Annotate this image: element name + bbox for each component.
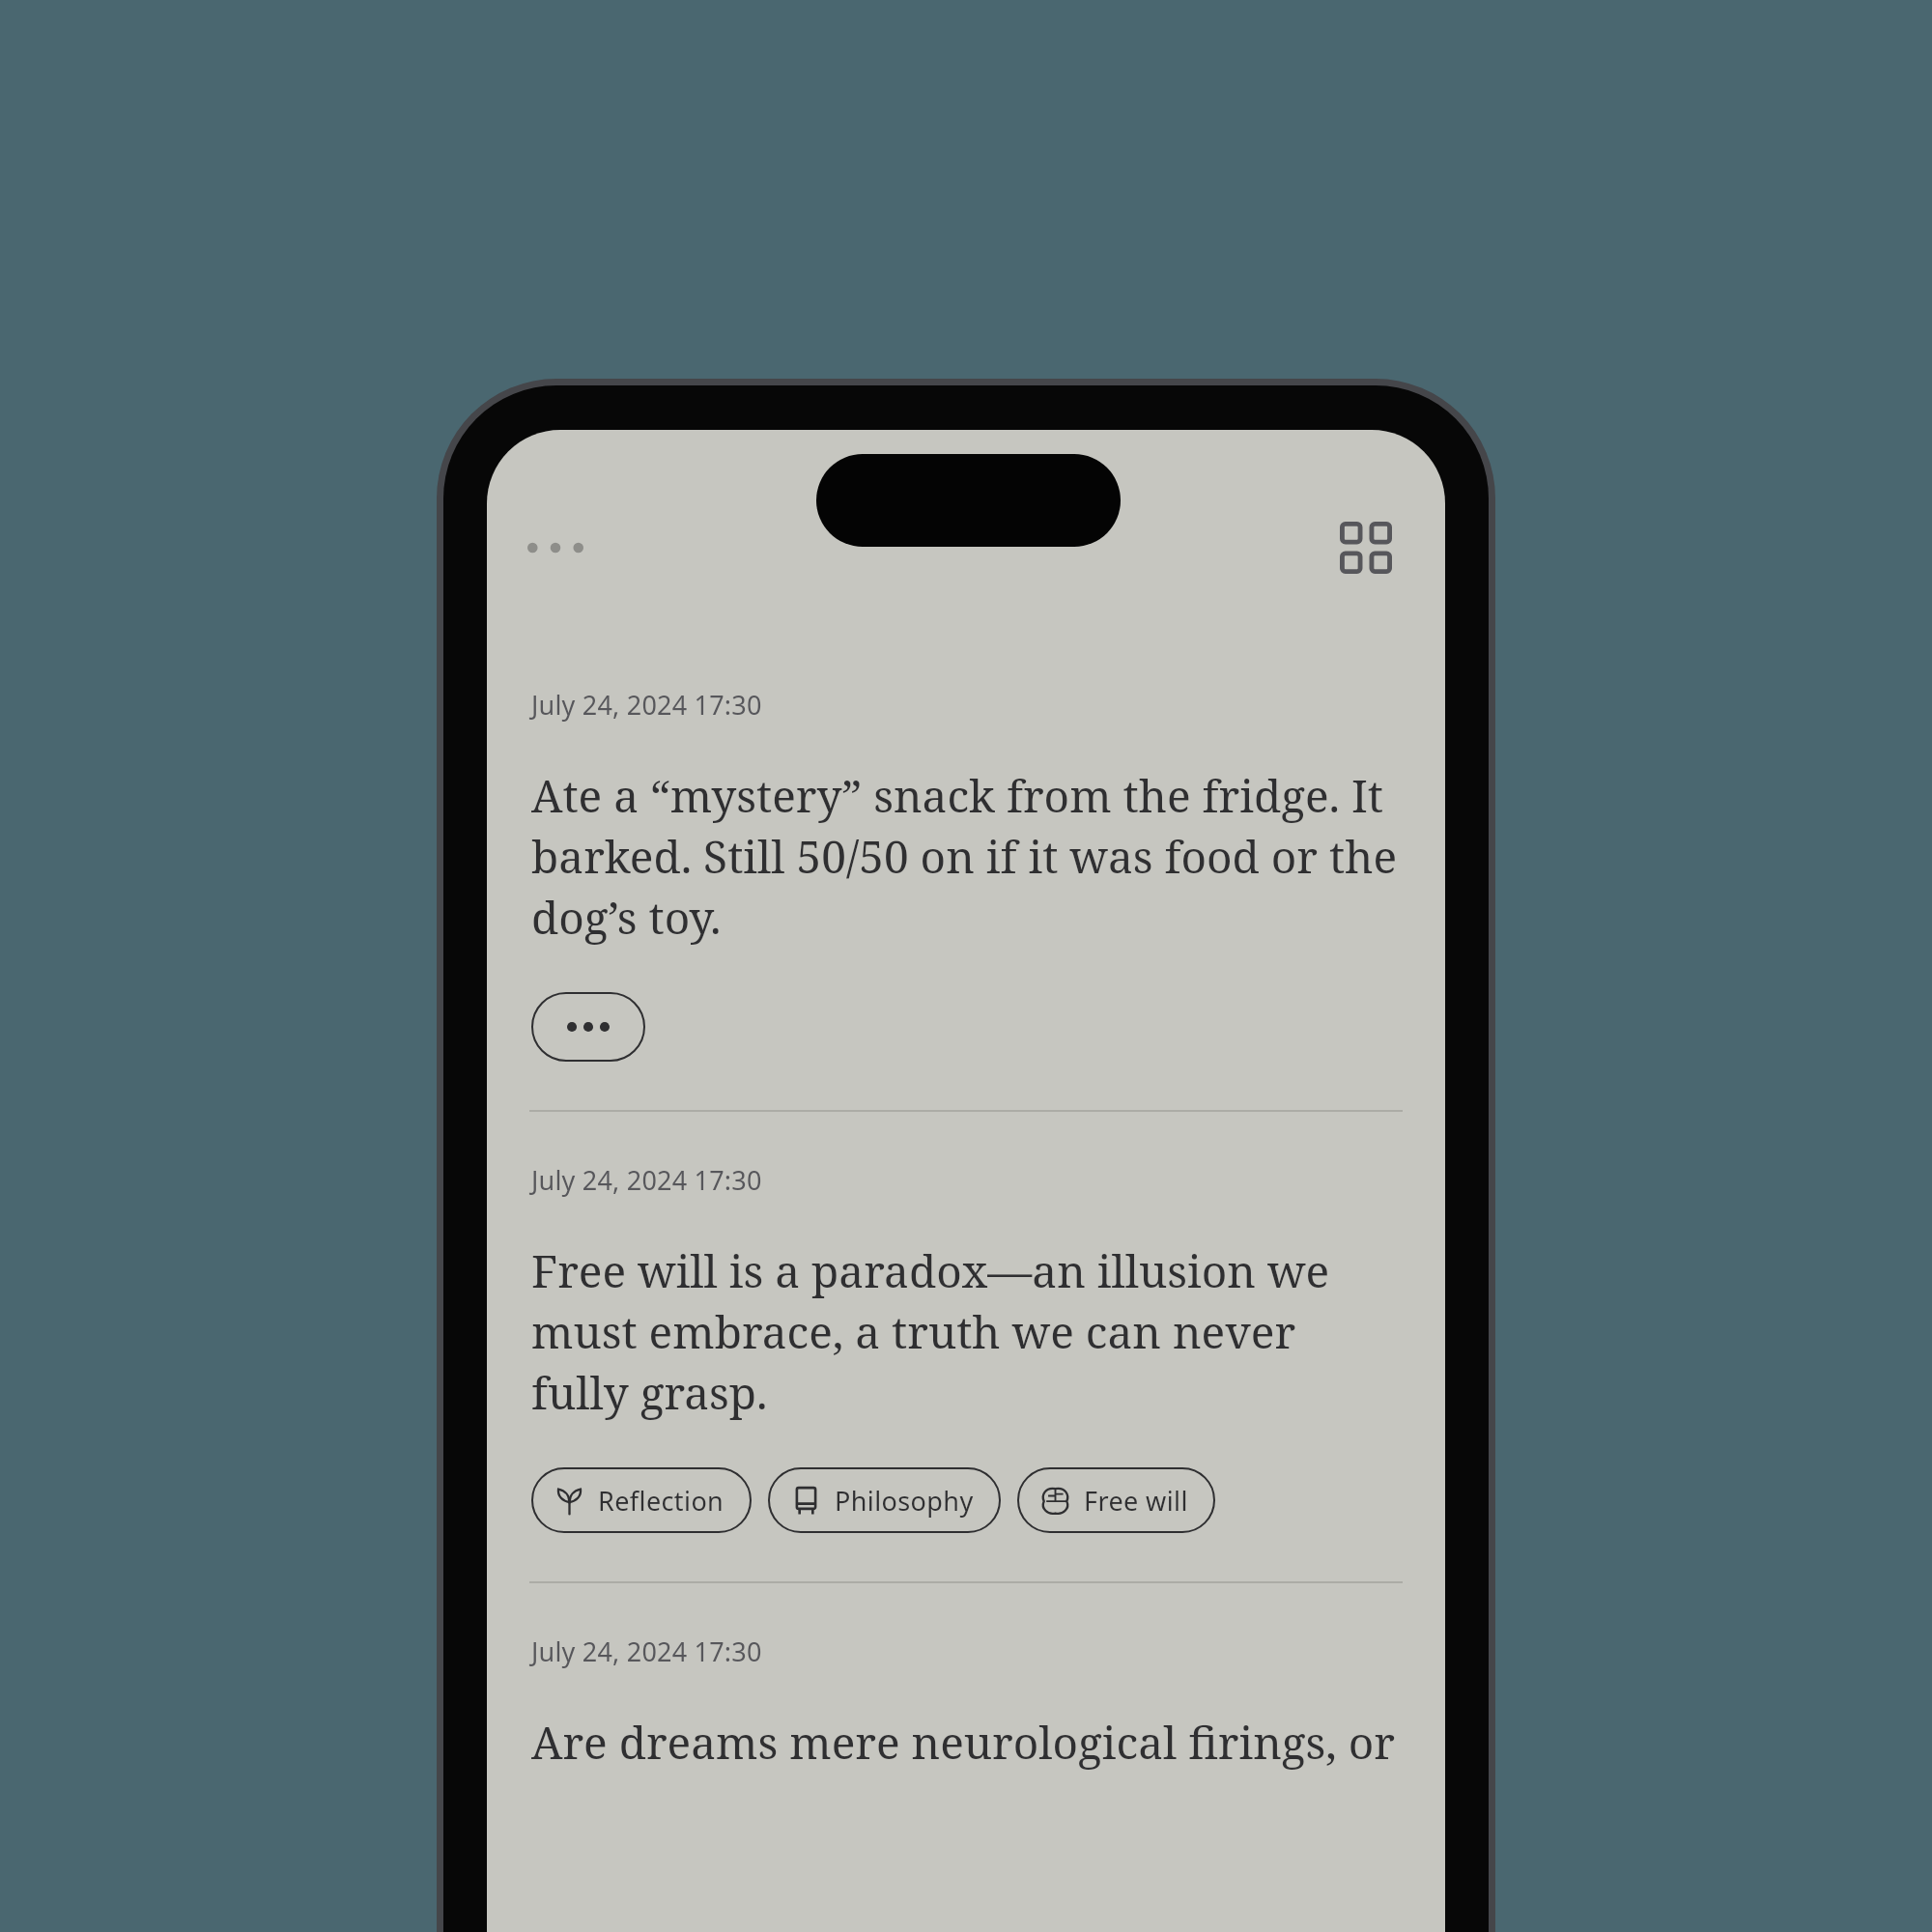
staticText: July 24, 2024 17:30 [531,687,762,723]
staticText: Philosophy [835,1483,974,1519]
staticText: Ate a “mystery” snack from the fridge. I… [531,765,1401,948]
staticText: Free will is a paradox—an illusion we mu… [531,1240,1401,1423]
button[interactable]: Grid view [1327,509,1405,586]
staticText: Reflection [598,1483,724,1519]
button[interactable]: More actions [531,992,645,1062]
button[interactable]: July 24, 2024 17:30 [487,1583,1445,1773]
button[interactable]: Free will [1017,1467,1215,1533]
staticText: Free will [1084,1483,1188,1519]
staticText: July 24, 2024 17:30 [531,1162,762,1198]
button[interactable]: July 24, 2024 17:30 [487,637,1445,1110]
button[interactable]: July 24, 2024 17:30 [487,1112,1445,1581]
button[interactable]: More options [527,512,614,583]
button[interactable]: Philosophy [768,1467,1001,1533]
button[interactable]: Reflection [531,1467,752,1533]
staticText: Are dreams mere neurological firings, or [531,1712,1396,1773]
staticText: July 24, 2024 17:30 [531,1634,762,1669]
